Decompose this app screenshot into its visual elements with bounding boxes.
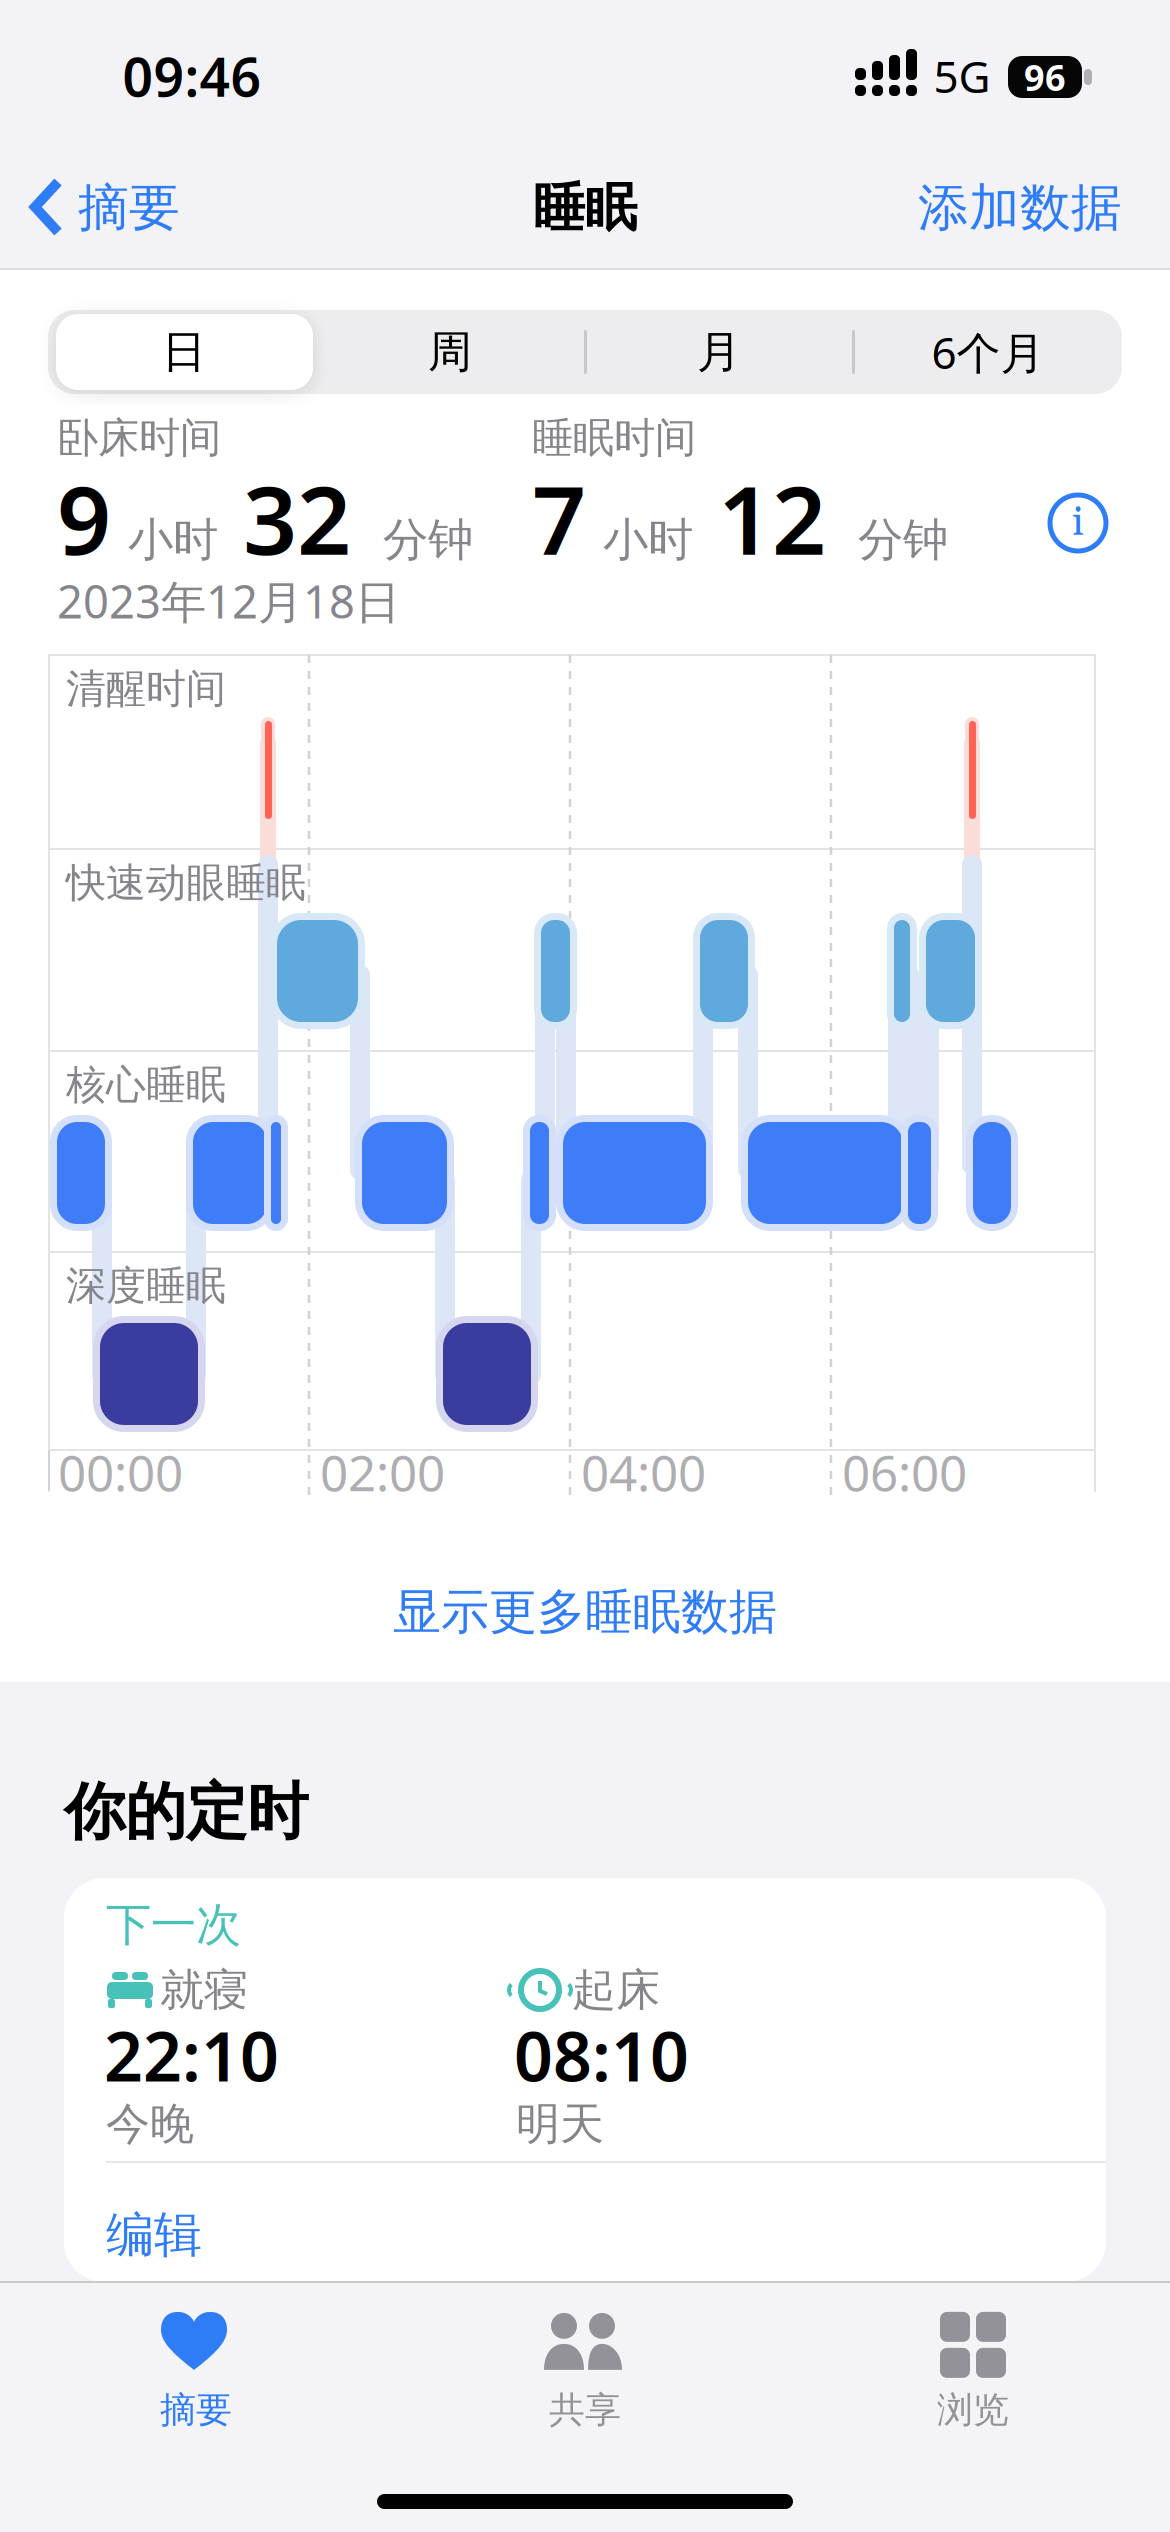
staticText: 摘要 <box>160 2388 232 2432</box>
staticText: 分钟 <box>858 512 948 568</box>
staticText: 清醒时间 <box>66 664 226 713</box>
staticText: 6个月 <box>931 323 1044 381</box>
staticText: 周 <box>428 325 472 379</box>
staticText: 显示更多睡眠数据 <box>393 1582 777 1641</box>
staticText: 96 <box>1024 53 1066 101</box>
staticText: 7 <box>532 455 586 581</box>
staticText: 06:00 <box>842 1439 967 1505</box>
staticText: 今晚 <box>106 2097 194 2151</box>
button[interactable]: 日 <box>53 310 314 394</box>
staticText: 睡眠 <box>533 176 637 240</box>
staticText: 摘要 <box>78 177 180 239</box>
staticText: 09:46 <box>122 41 261 111</box>
button[interactable]: 显示更多睡眠数据 <box>285 1562 885 1662</box>
staticText: 12 <box>718 455 826 581</box>
staticText: i <box>1072 498 1084 548</box>
button[interactable]: 编辑 <box>106 2190 306 2280</box>
button[interactable]: 添加数据 <box>842 164 1122 252</box>
staticText: 下一次 <box>106 1897 241 1953</box>
button[interactable]: 月 <box>588 310 849 394</box>
button[interactable]: 周 <box>319 310 580 394</box>
staticText: 小时 <box>603 512 693 568</box>
staticText: 5G <box>933 47 990 105</box>
staticText: 编辑 <box>106 2205 202 2264</box>
button[interactable]: 关于睡眠 <box>1043 488 1113 558</box>
button[interactable]: 摘要 <box>30 164 260 252</box>
staticText: 2023年12月18日 <box>57 571 400 631</box>
staticText: 分钟 <box>383 512 473 568</box>
staticText: 浏览 <box>937 2388 1009 2432</box>
staticText: 深度睡眠 <box>66 1261 226 1310</box>
staticText: 日 <box>162 325 206 379</box>
staticText: 32 <box>243 455 351 581</box>
staticText: 添加数据 <box>918 177 1122 239</box>
staticText: 9 <box>57 455 111 581</box>
staticText: 卧床时间 <box>57 413 221 463</box>
staticText: 共享 <box>549 2388 621 2432</box>
staticText: 核心睡眠 <box>66 1060 226 1109</box>
button[interactable]: 6个月 <box>854 310 1122 394</box>
staticText: 起床 <box>572 1963 660 2017</box>
staticText: 月 <box>697 325 741 379</box>
staticText: 02:00 <box>320 1439 445 1505</box>
button[interactable]: 浏览 <box>853 2292 1093 2452</box>
button[interactable]: 摘要 <box>76 2292 316 2452</box>
staticText: 快速动眼睡眠 <box>66 858 306 907</box>
staticText: 明天 <box>516 2097 604 2151</box>
staticText: 就寝 <box>160 1963 248 2017</box>
staticText: 小时 <box>128 512 218 568</box>
staticText: 22:10 <box>104 2010 279 2100</box>
staticText: 04:00 <box>581 1439 706 1505</box>
button[interactable]: 共享 <box>465 2292 705 2452</box>
staticText: 你的定时 <box>64 1774 308 1850</box>
staticText: 08:10 <box>514 2010 689 2100</box>
staticText: 睡眠时间 <box>532 413 696 463</box>
staticText: 00:00 <box>58 1439 183 1505</box>
